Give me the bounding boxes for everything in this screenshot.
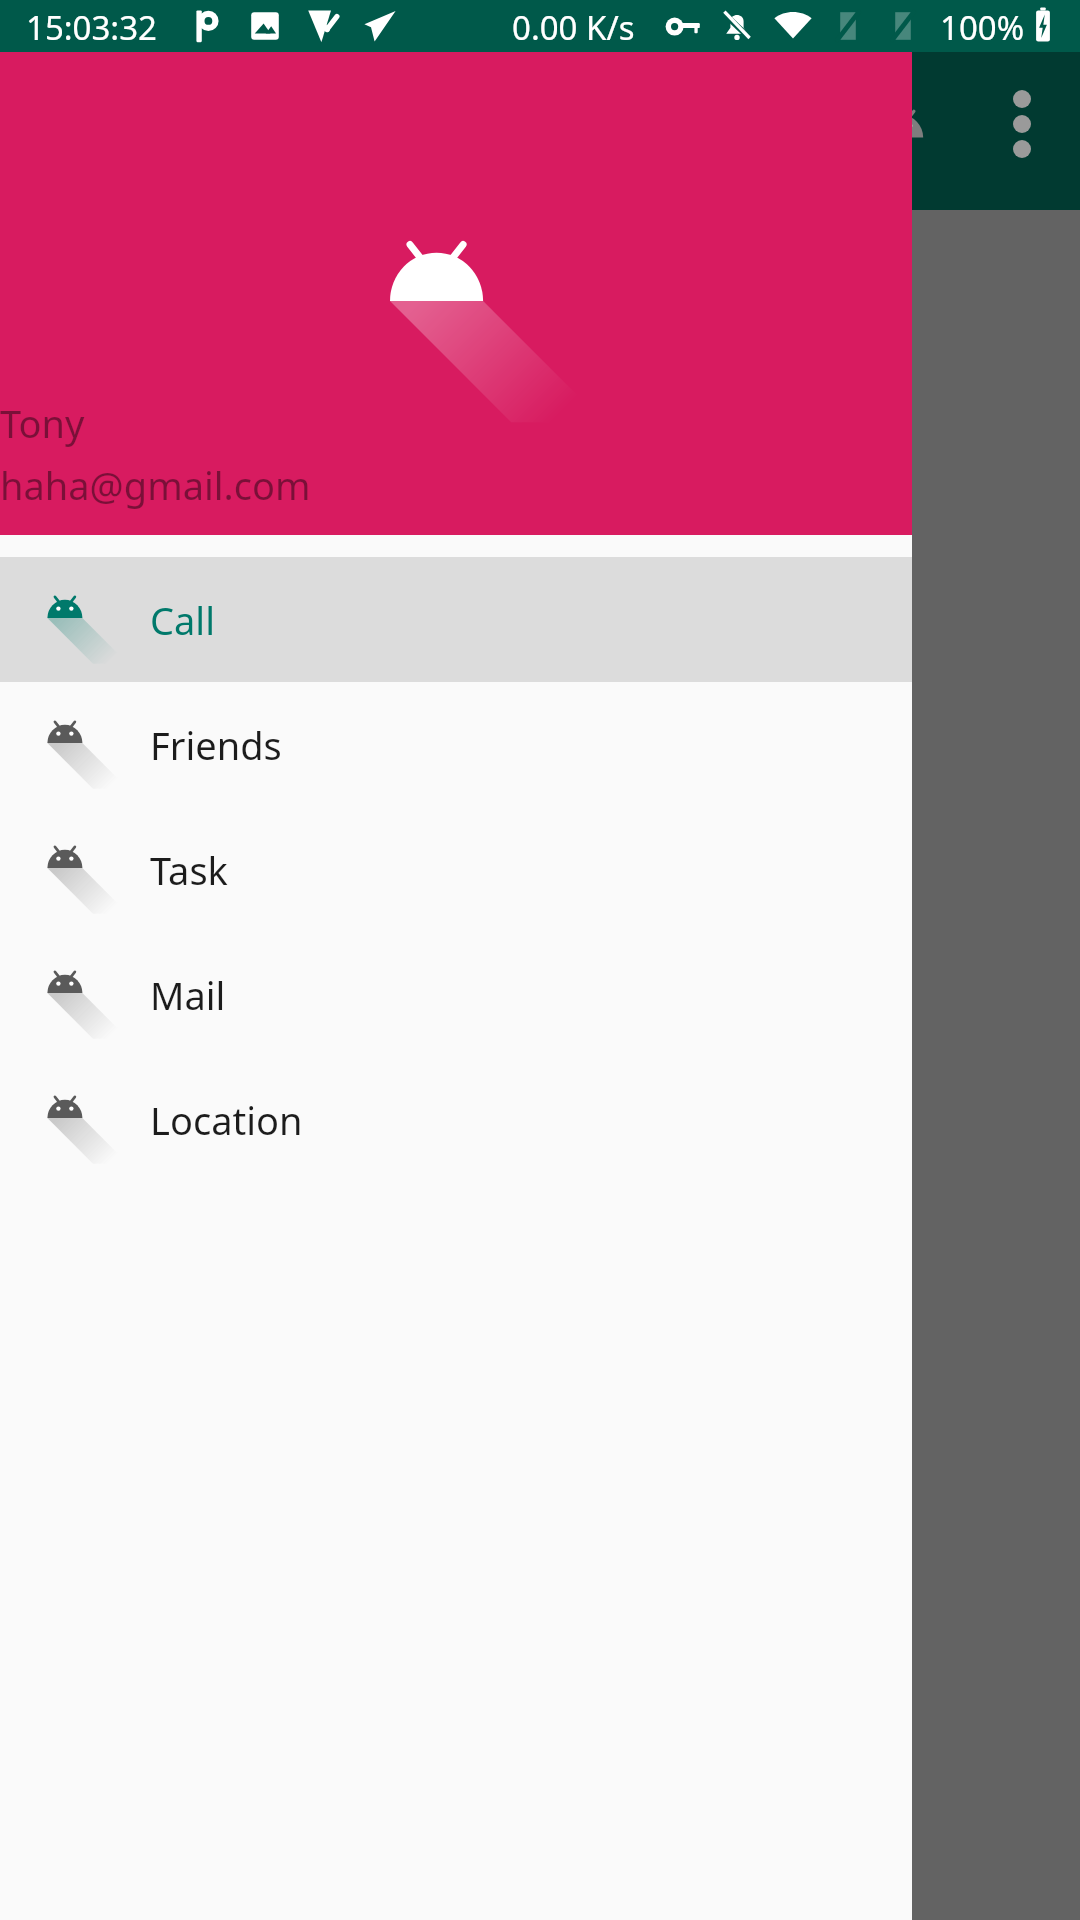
button[interactable]: Friends — [0, 682, 912, 807]
staticText: Call — [150, 594, 215, 646]
button[interactable]: Call — [0, 557, 912, 682]
staticText: Tony — [0, 397, 85, 449]
staticText: Task — [150, 844, 228, 896]
staticText: Location — [150, 1094, 303, 1146]
staticText: Mail — [150, 969, 226, 1021]
button[interactable]: Location — [0, 1057, 912, 1182]
staticText: 0.00 K/s — [512, 5, 635, 50]
staticText: 15:03:32 — [26, 5, 157, 50]
staticText: 100% — [940, 5, 1025, 50]
staticText: haha@gmail.com — [0, 459, 311, 511]
button[interactable]: More options — [974, 76, 1070, 172]
button[interactable]: Task — [0, 807, 912, 932]
button[interactable]: Tony — [0, 52, 912, 535]
button[interactable]: Mail — [0, 932, 912, 1057]
staticText: Friends — [150, 719, 282, 771]
